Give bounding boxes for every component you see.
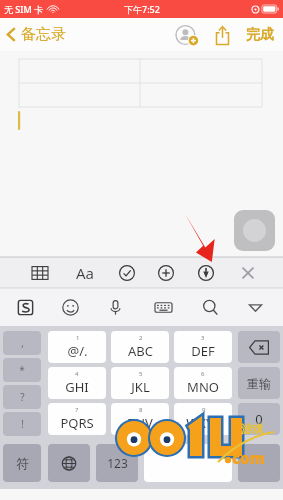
button[interactable]: Keyboard layout xyxy=(149,288,177,326)
staticText: JKL xyxy=(131,378,150,396)
staticText: 4 xyxy=(75,370,79,378)
button[interactable]: Add attachment xyxy=(152,257,180,288)
button[interactable]: Sogou input xyxy=(11,288,39,326)
staticText: 6 xyxy=(201,370,205,378)
button[interactable]: 4 xyxy=(48,367,106,399)
staticText: ABC xyxy=(128,342,153,360)
button[interactable]: Share xyxy=(209,22,235,48)
staticText: 符 xyxy=(16,455,29,471)
staticText: 5 xyxy=(139,370,143,378)
button[interactable]: Markup pen xyxy=(192,257,220,288)
button[interactable]: Switch language xyxy=(48,444,90,482)
button[interactable]: Close keyboard xyxy=(234,257,262,288)
staticText: , xyxy=(21,336,24,350)
button[interactable]: 完成 xyxy=(244,26,276,44)
staticText: 0 xyxy=(255,410,263,428)
button[interactable]: * xyxy=(3,358,41,382)
button[interactable]: 123 xyxy=(96,444,138,482)
staticText: 3 xyxy=(201,334,205,342)
button[interactable]: ? xyxy=(3,385,41,409)
staticText: * xyxy=(19,363,25,377)
staticText: 备忘录 xyxy=(21,25,66,44)
button[interactable]: 3 xyxy=(174,331,232,363)
button[interactable] xyxy=(144,444,232,482)
staticText: com xyxy=(232,448,265,468)
staticText: @/. xyxy=(67,342,88,360)
button[interactable]: 6 xyxy=(174,367,232,399)
button[interactable]: Emoji xyxy=(56,288,84,326)
staticText: 123 xyxy=(107,455,128,471)
staticText: PQRS xyxy=(60,414,94,432)
staticText: 2 xyxy=(139,334,143,342)
button[interactable]: , xyxy=(3,331,41,355)
button[interactable]: 备忘录 xyxy=(6,25,66,44)
button[interactable]: 8 xyxy=(111,403,169,435)
button[interactable]: Search xyxy=(196,288,224,326)
button[interactable]: Backspace xyxy=(238,331,280,363)
button[interactable]: Voice input xyxy=(101,288,129,326)
button[interactable]: 1 xyxy=(48,331,106,363)
button[interactable]: Checklist xyxy=(113,257,141,288)
staticText: 游戏 xyxy=(241,422,263,436)
button[interactable]: 重输 xyxy=(238,367,280,399)
button[interactable]: 7 xyxy=(48,403,106,435)
staticText: 8 xyxy=(139,406,143,414)
staticText: ? xyxy=(20,390,25,404)
staticText: GHI xyxy=(65,378,89,396)
staticText: 完成 xyxy=(246,26,274,44)
button[interactable] xyxy=(238,444,280,482)
staticText: 无 SIM 卡 xyxy=(4,3,44,15)
button[interactable]: ! xyxy=(3,412,41,436)
button[interactable]: 符 xyxy=(3,444,41,482)
staticText: 重输 xyxy=(247,376,271,391)
staticText: TUV xyxy=(128,414,153,432)
button[interactable]: Hide keyboard xyxy=(241,288,269,326)
button[interactable]: Table xyxy=(26,257,54,288)
button[interactable]: Handwriting panel xyxy=(234,210,275,251)
button[interactable]: 0 xyxy=(238,403,280,435)
staticText: MNO xyxy=(187,378,219,396)
staticText: Aa xyxy=(76,263,95,283)
staticText: 下午7:52 xyxy=(124,3,160,15)
staticText: DEF xyxy=(191,342,215,360)
button[interactable]: 9 xyxy=(174,403,232,435)
button[interactable]: Add people xyxy=(174,22,200,48)
button[interactable]: Aa xyxy=(70,257,100,288)
staticText: WXYZ xyxy=(186,414,221,432)
staticText: 1 xyxy=(76,334,80,342)
staticText: 7 xyxy=(75,406,79,414)
button[interactable]: 2 xyxy=(111,331,169,363)
button[interactable]: 5 xyxy=(111,367,169,399)
staticText: 9 xyxy=(202,406,206,414)
staticText: ! xyxy=(21,417,24,431)
